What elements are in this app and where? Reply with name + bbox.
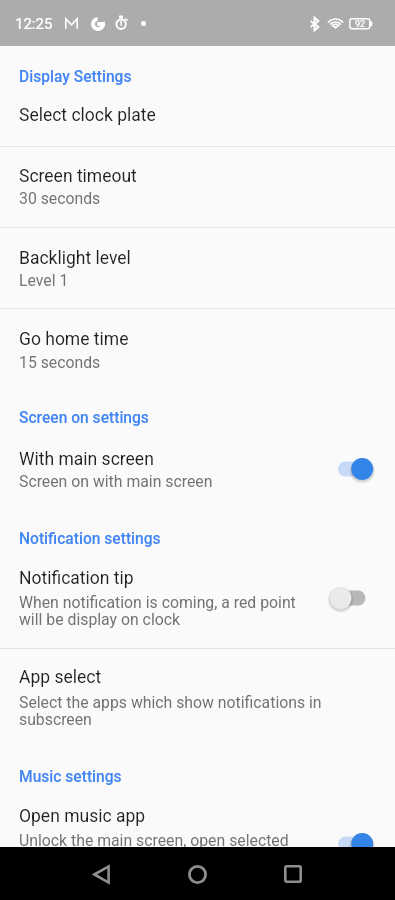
- button[interactable]: Back: [78, 851, 124, 897]
- staticText: Music settings: [19, 768, 122, 786]
- button[interactable]: With main screen: [0, 432, 395, 504]
- staticText: Level 1: [19, 271, 69, 290]
- button[interactable]: Go home time: [0, 309, 395, 389]
- staticText: 15 seconds: [19, 353, 101, 372]
- staticText: Select the apps which show notifications…: [19, 693, 359, 729]
- button[interactable]: Screen timeout: [0, 147, 395, 227]
- staticText: 92: [355, 19, 366, 30]
- button[interactable]: Backlight level: [0, 228, 395, 308]
- staticText: Display Settings: [19, 68, 132, 86]
- staticText: Select clock plate: [19, 105, 156, 126]
- button[interactable]: Select clock plate: [0, 92, 395, 146]
- button[interactable]: App select: [0, 649, 395, 739]
- staticText: Go home time: [19, 329, 129, 350]
- button[interactable]: Notification tip: [0, 552, 395, 647]
- button[interactable]: Recent apps: [270, 851, 316, 897]
- button[interactable]: Open music app, on: [326, 826, 378, 862]
- staticText: Screen on settings: [19, 409, 149, 427]
- staticText: Screen timeout: [19, 166, 137, 187]
- button[interactable]: Home: [174, 851, 220, 897]
- staticText: When notification is coming, a red point…: [19, 593, 299, 629]
- staticText: App select: [19, 667, 102, 688]
- staticText: Unlock the main screen, open selected mu…: [19, 831, 299, 867]
- staticText: 30 seconds: [19, 189, 101, 208]
- staticText: 12:25: [15, 15, 53, 33]
- button[interactable]: Open music app: [0, 790, 395, 847]
- staticText: Screen on with main screen: [19, 472, 213, 491]
- staticText: With main screen: [19, 449, 154, 470]
- staticText: Notification settings: [19, 530, 161, 548]
- staticText: Backlight level: [19, 248, 131, 269]
- button[interactable]: Notification tip, off: [326, 580, 378, 616]
- staticText: Notification tip: [19, 568, 134, 589]
- button[interactable]: With main screen, on: [326, 451, 378, 487]
- staticText: Open music app: [19, 806, 146, 827]
